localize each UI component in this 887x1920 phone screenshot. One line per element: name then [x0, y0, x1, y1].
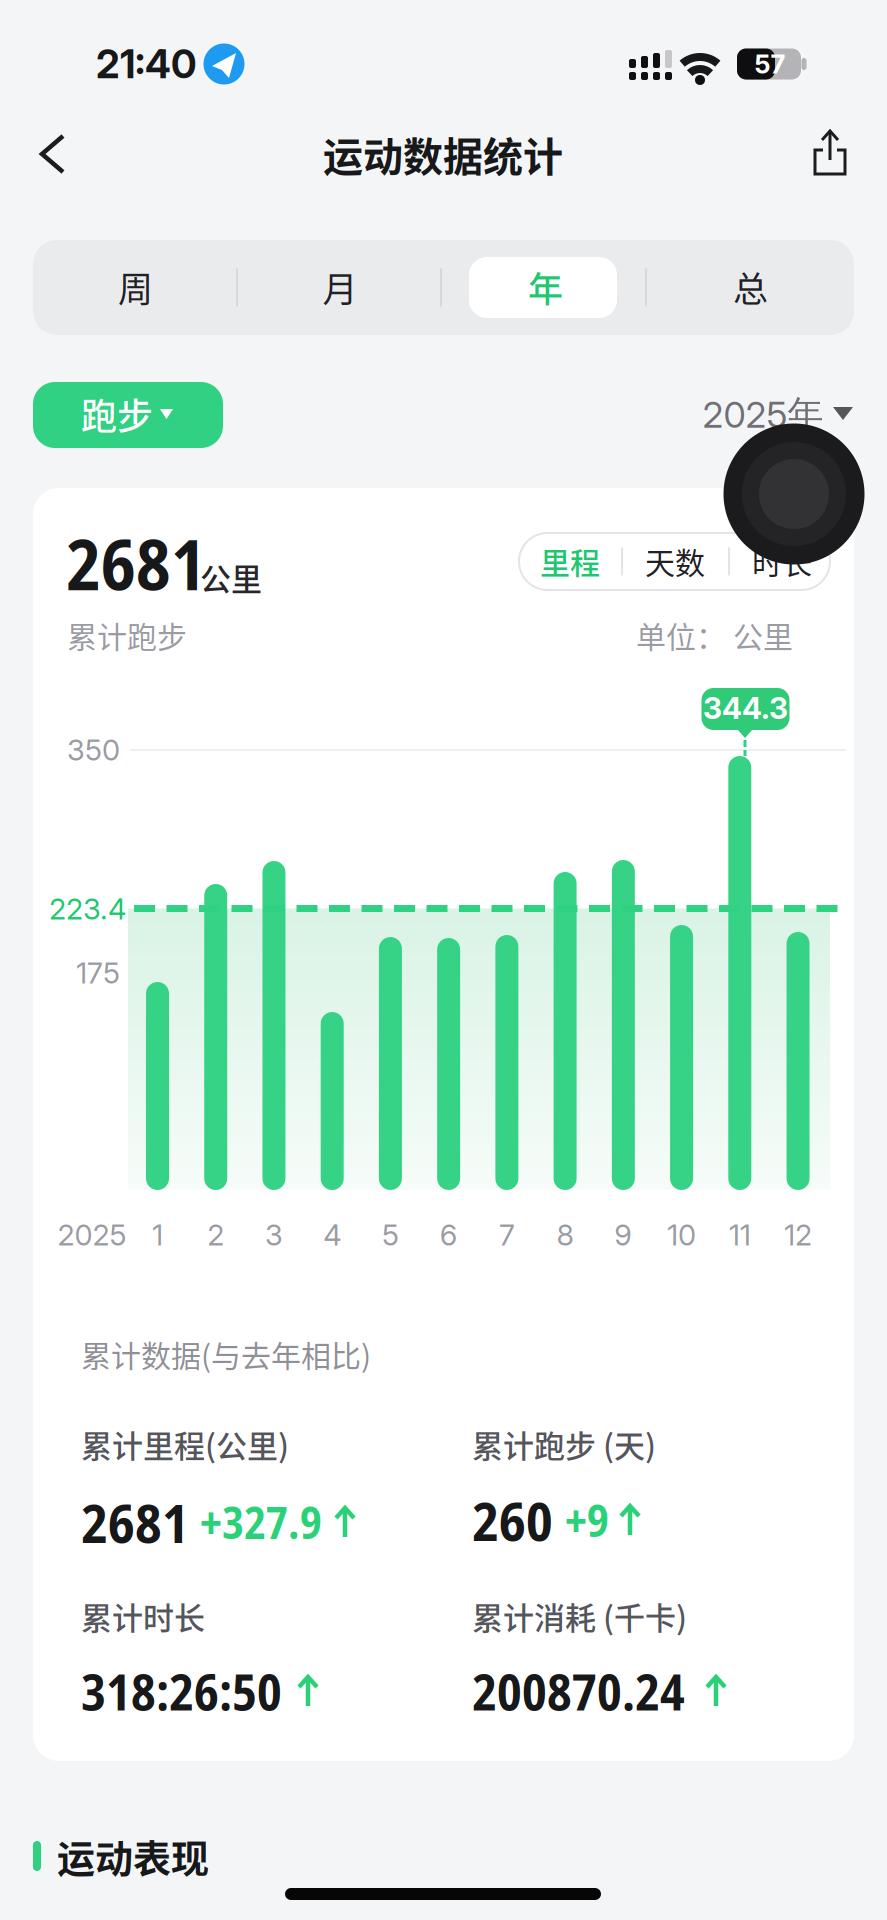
staticText: 175	[76, 955, 120, 991]
staticText: 周	[118, 262, 153, 312]
staticText: 344.3	[703, 690, 788, 726]
staticText: 累计跑步	[67, 613, 187, 657]
staticText: 10	[667, 1217, 696, 1253]
staticText: +9	[565, 1490, 609, 1550]
staticText: +327.9	[200, 1492, 322, 1552]
staticText: 2	[207, 1217, 224, 1253]
staticText: 总	[733, 262, 768, 312]
staticText: 累计跑步 (天)	[472, 1422, 656, 1466]
staticText: 跑步	[81, 388, 153, 440]
staticText: 年	[528, 262, 563, 312]
staticText: 318:26:50	[81, 1657, 282, 1725]
staticText: 1	[152, 1217, 163, 1253]
staticText: 11	[729, 1217, 751, 1253]
staticText: 3	[265, 1217, 283, 1253]
staticText: 7	[499, 1217, 515, 1253]
staticText: 223.4	[49, 891, 126, 927]
staticText: 运动数据统计	[323, 125, 563, 183]
staticText: 运动表现	[57, 1828, 209, 1883]
staticText: 57	[754, 48, 785, 80]
staticText: 350	[67, 732, 120, 768]
staticText: 260	[472, 1483, 553, 1557]
staticText: 21:40	[96, 40, 196, 88]
staticText: 累计消耗 (千卡)	[472, 1594, 687, 1638]
staticText: 2025	[57, 1217, 126, 1253]
staticText: 12	[784, 1217, 812, 1253]
staticText: 累计里程(公里)	[81, 1422, 289, 1466]
staticText: 2681	[66, 515, 206, 611]
staticText: 累计数据(与去年相比)	[81, 1332, 371, 1376]
staticText: 时长	[752, 539, 812, 583]
staticText: 9	[614, 1217, 632, 1253]
staticText: 累计时长	[81, 1594, 205, 1638]
staticText: 里程	[540, 539, 600, 583]
staticText: 单位： 公里	[636, 613, 793, 657]
staticText: 6	[440, 1217, 458, 1253]
staticText: 4	[323, 1217, 341, 1253]
staticText: 公里	[200, 555, 262, 599]
staticText: 8	[557, 1217, 574, 1253]
staticText: 2681	[81, 1485, 189, 1559]
staticText: 月	[322, 262, 357, 312]
staticText: 200870.24	[472, 1657, 685, 1725]
staticText: 5	[382, 1217, 399, 1253]
staticText: 2025年	[702, 391, 823, 437]
staticText: 天数	[645, 539, 705, 583]
